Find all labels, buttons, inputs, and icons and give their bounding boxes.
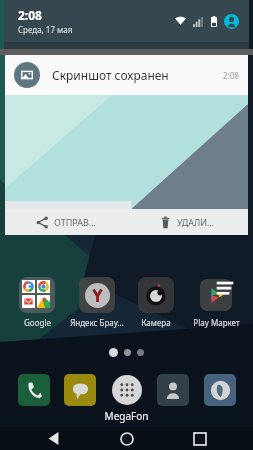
button[interactable]: Яндекс Брау… xyxy=(69,274,125,330)
button[interactable]: Phone xyxy=(15,371,53,409)
staticText: Play Маркет xyxy=(193,317,240,328)
staticText: Скриншот сохранен xyxy=(52,67,169,83)
button[interactable]: Google xyxy=(9,274,65,330)
staticText: Яндекс Брау… xyxy=(70,317,124,328)
button[interactable]: User xyxy=(224,14,239,29)
button[interactable]: Apps xyxy=(108,371,146,409)
button[interactable]: УДАЛИ… xyxy=(126,209,248,235)
staticText: Камера xyxy=(141,317,171,328)
button[interactable]: Contacts xyxy=(154,371,192,409)
button[interactable]: Камера xyxy=(128,274,184,330)
button[interactable]: Browser xyxy=(201,371,239,409)
staticText: 2:08 xyxy=(18,7,42,23)
staticText: УДАЛИ… xyxy=(177,216,215,228)
button[interactable]: Messages xyxy=(61,371,99,409)
button[interactable]: ОТПРАВ… xyxy=(5,209,126,235)
button[interactable]: Play Маркет xyxy=(188,274,244,330)
button[interactable]: Back xyxy=(33,427,73,450)
button[interactable]: Recents xyxy=(180,427,220,450)
staticText: Среда, 17 мая xyxy=(18,24,73,35)
staticText: 2:08 xyxy=(223,70,239,81)
staticText: Google xyxy=(24,317,51,328)
button[interactable]: Скриншот сохранен xyxy=(5,55,248,235)
staticText: ОТПРАВ… xyxy=(54,216,96,228)
button[interactable]: Home xyxy=(107,427,147,450)
staticText: MegaFon xyxy=(0,409,253,423)
